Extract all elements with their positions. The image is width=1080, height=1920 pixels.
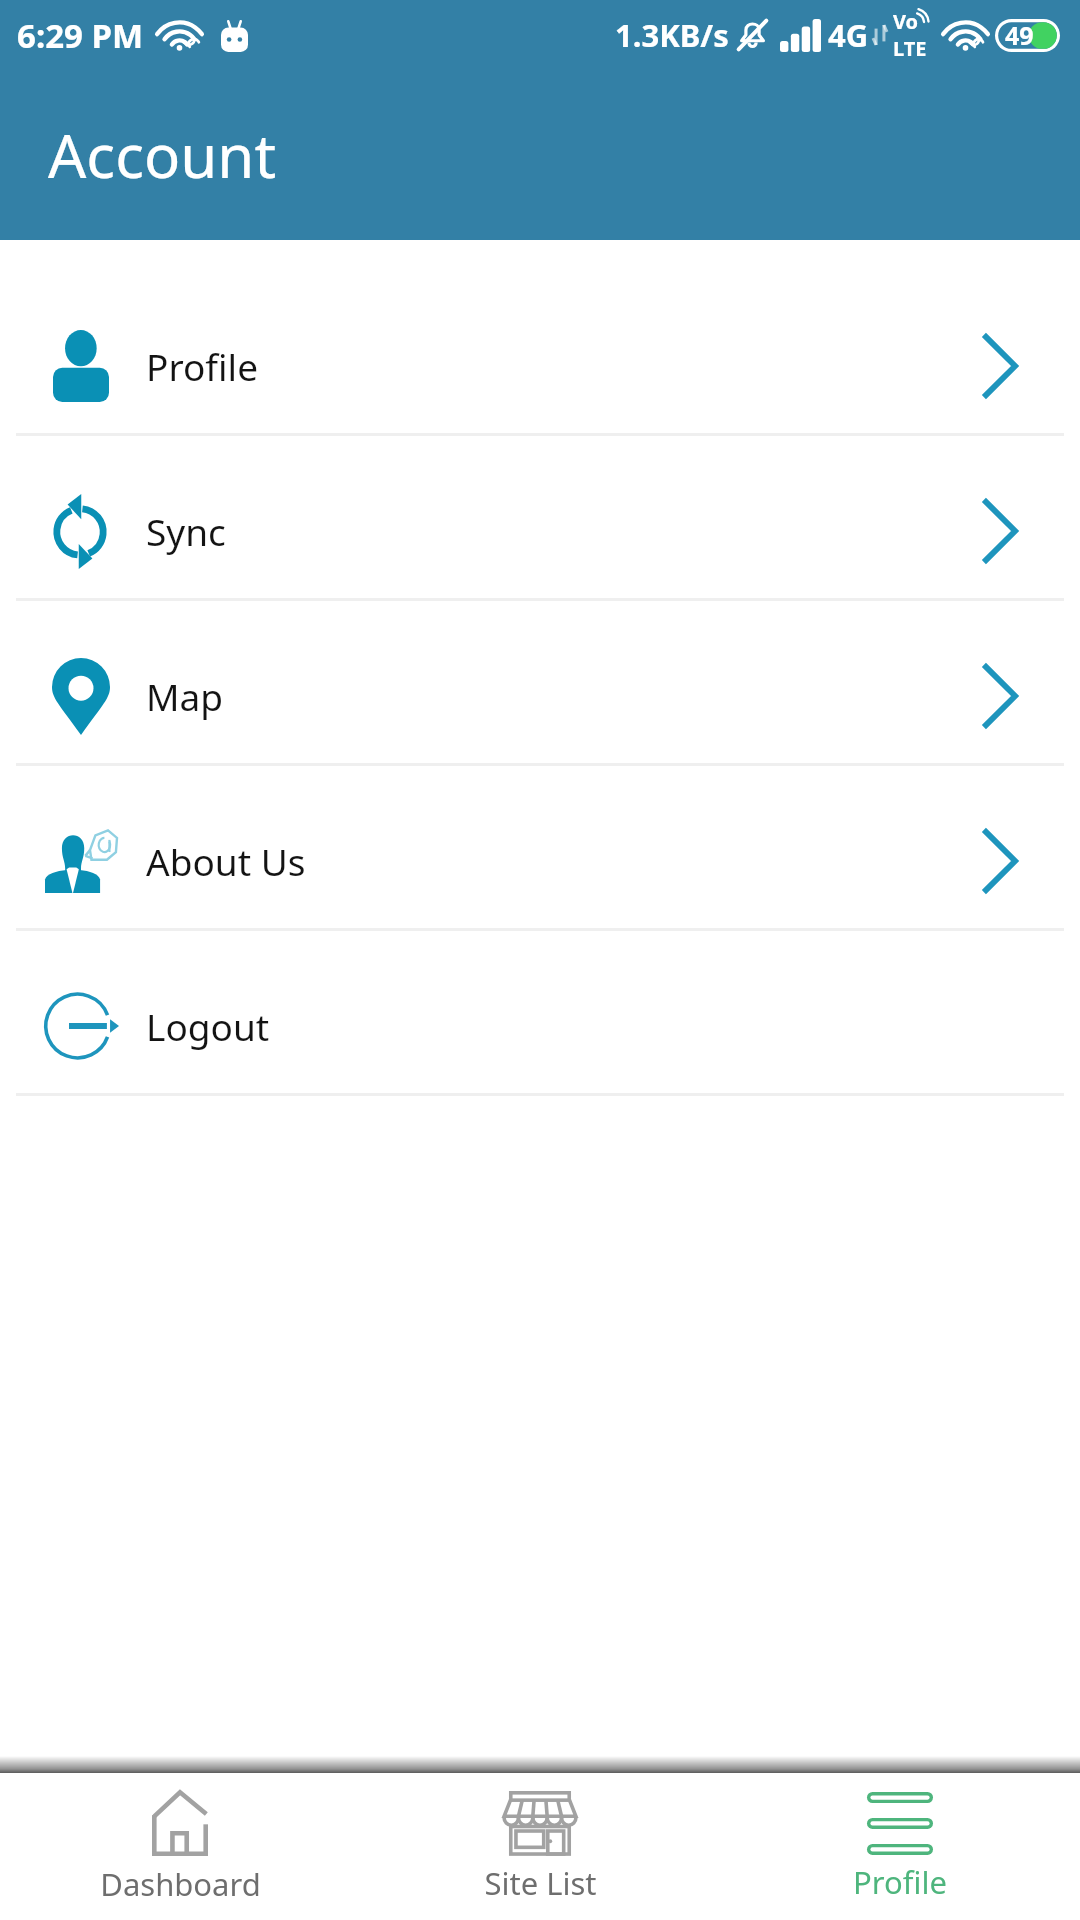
staticText: 1.3KB/s (615, 14, 729, 56)
staticText: Site List (484, 1862, 597, 1904)
button[interactable]: Logout (0, 931, 1080, 1093)
button[interactable]: Sync (0, 436, 1080, 598)
staticText: Profile (146, 341, 258, 391)
button[interactable]: Profile (0, 271, 1080, 433)
staticText: Vo (893, 8, 919, 35)
staticText: Dashboard (100, 1863, 261, 1905)
staticText: Map (146, 671, 224, 721)
staticText: Sync (146, 506, 226, 556)
button[interactable]: Map (0, 601, 1080, 763)
staticText: 6:29 PM (17, 13, 144, 58)
button[interactable]: Dashboard (0, 1773, 360, 1920)
staticText: About Us (146, 836, 306, 886)
button[interactable]: About Us (0, 766, 1080, 928)
staticText: Account (48, 114, 277, 196)
staticText: 49 (1005, 18, 1034, 52)
button[interactable]: Profile (720, 1773, 1080, 1920)
staticText: 4G (828, 14, 869, 56)
staticText: LTE (893, 35, 927, 62)
staticText: Logout (146, 1001, 270, 1051)
button[interactable]: Site List (360, 1773, 720, 1920)
staticText: Profile (853, 1861, 947, 1903)
